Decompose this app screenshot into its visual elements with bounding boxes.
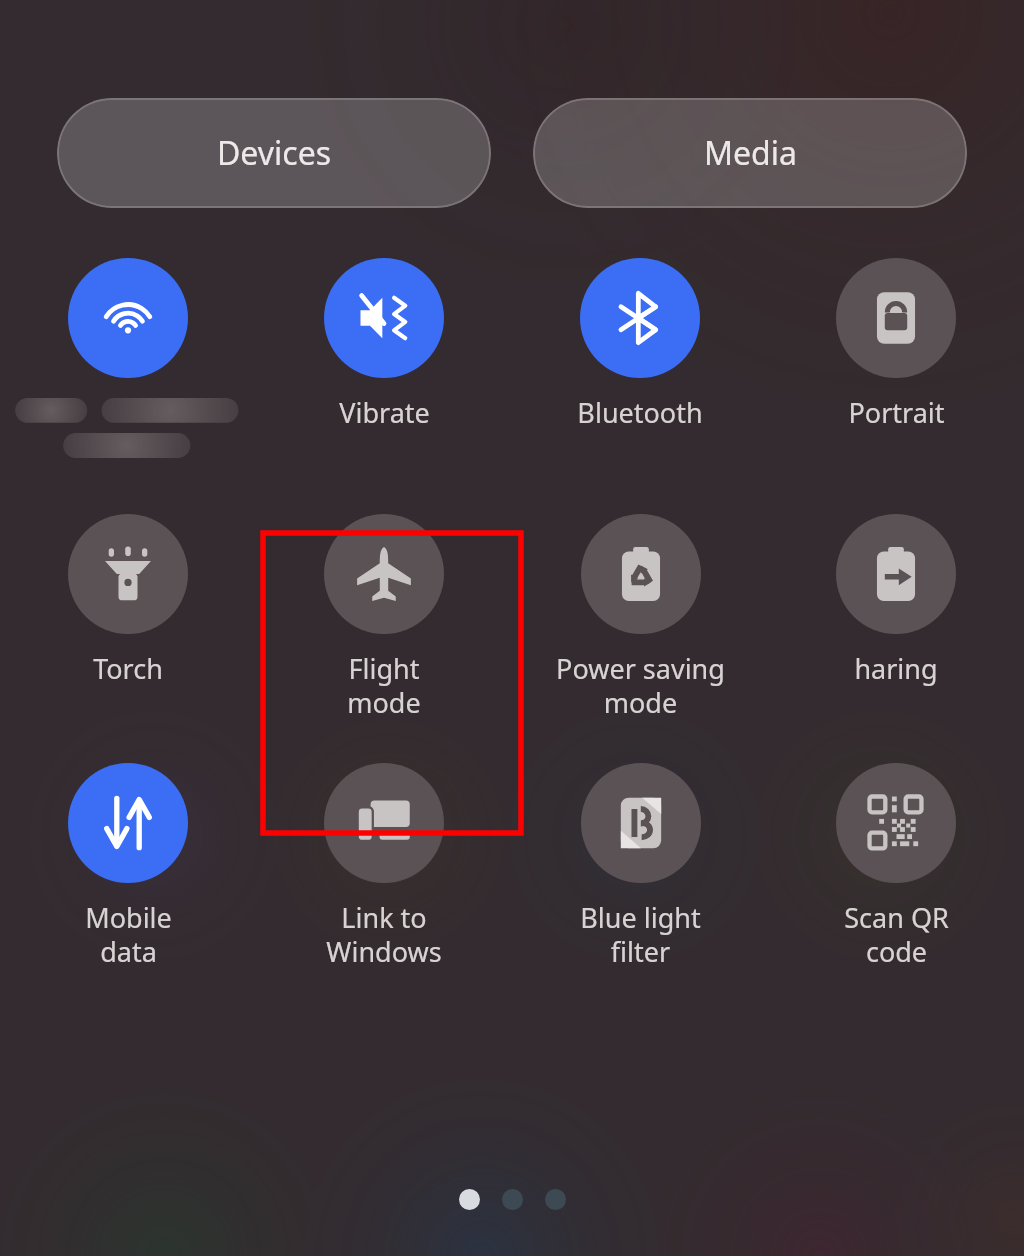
staticText: Link to Windows: [326, 899, 442, 970]
button[interactable]: Portrait: [836, 258, 956, 431]
staticText: Scan QR code: [844, 899, 949, 970]
staticText: Portrait: [848, 394, 945, 431]
button[interactable]: Devices: [57, 98, 491, 208]
staticText: Power saving mode: [556, 650, 725, 721]
button[interactable]: Page indicator: [502, 1189, 523, 1210]
button[interactable]: Media: [533, 98, 967, 208]
button[interactable]: Link to Windows: [324, 763, 444, 970]
button[interactable]: Wi-Fi: [8, 258, 248, 472]
button[interactable]: Scan QR code: [836, 763, 956, 970]
button[interactable]: Torch: [68, 514, 188, 687]
button[interactable]: Flight mode: [324, 514, 444, 721]
button[interactable]: Bluetooth: [577, 258, 703, 431]
button[interactable]: Power saving mode: [556, 514, 725, 721]
staticText: haring: [854, 650, 938, 687]
button[interactable]: Mobile data: [68, 763, 188, 970]
staticText: Torch: [93, 650, 163, 687]
staticText: Vibrate: [339, 394, 430, 431]
staticText: Flight mode: [347, 650, 421, 721]
button[interactable]: Page indicator: [545, 1189, 566, 1210]
staticText: Media: [704, 131, 797, 175]
button[interactable]: Battery sharing: [836, 514, 956, 687]
button[interactable]: Vibrate: [324, 258, 444, 431]
staticText: Devices: [217, 131, 332, 175]
staticText: Bluetooth: [577, 394, 703, 431]
staticText: Blue light filter: [580, 899, 701, 970]
button[interactable]: Blue light filter: [580, 763, 701, 970]
button[interactable]: Page indicator: [459, 1189, 480, 1210]
staticText: Mobile data: [85, 899, 172, 970]
